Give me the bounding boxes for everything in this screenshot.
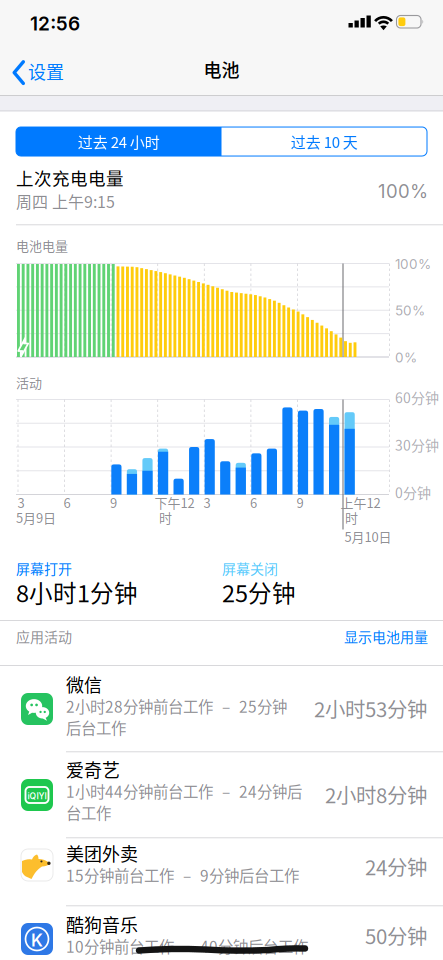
staticText: 6 bbox=[63, 493, 70, 512]
staticText: 2小时8分钟 bbox=[325, 779, 427, 809]
staticText: 上午12 bbox=[340, 493, 380, 512]
staticText: 应用活动 bbox=[16, 626, 72, 646]
staticText: 2小时28分钟前台工作 – 25分钟 bbox=[66, 695, 287, 717]
staticText: 9 bbox=[110, 493, 117, 512]
staticText: 3 bbox=[17, 493, 24, 512]
staticText: 8小时1分钟 bbox=[16, 575, 138, 609]
staticText: 1小时44分钟前台工作 – 24分钟后 bbox=[66, 780, 302, 802]
button[interactable]: iQIYI bbox=[0, 752, 443, 838]
staticText: 5月10日 bbox=[344, 527, 391, 546]
staticText: 电池电量 bbox=[16, 236, 68, 255]
staticText: 爱奇艺 bbox=[66, 756, 120, 782]
staticText: 过去 24 小时 bbox=[78, 131, 160, 152]
staticText: 酷狗音乐 bbox=[66, 911, 138, 937]
staticText: 3 bbox=[203, 493, 210, 512]
staticText: 5月9日 bbox=[16, 508, 56, 527]
staticText: 活动 bbox=[16, 373, 42, 392]
button[interactable]: 过去 24 小时 bbox=[16, 127, 221, 156]
staticText: 100% bbox=[378, 180, 428, 202]
staticText: 后台工作 bbox=[66, 716, 126, 739]
staticText: 台工作 bbox=[66, 801, 111, 824]
staticText: 6 bbox=[250, 493, 257, 512]
button[interactable]: 设置 bbox=[0, 48, 92, 95]
staticText: 设置 bbox=[28, 58, 64, 84]
staticText: 50分钟 bbox=[365, 920, 427, 950]
staticText: 屏幕关闭 bbox=[222, 558, 278, 578]
staticText: 60分钟 bbox=[395, 387, 439, 407]
button[interactable]: 过去 10 天 bbox=[221, 127, 427, 156]
button[interactable]: 屏幕打开 bbox=[16, 558, 206, 610]
staticText: 上次充电电量 bbox=[16, 165, 124, 190]
staticText: 时 bbox=[159, 508, 172, 527]
staticText: 0% bbox=[395, 349, 417, 366]
button[interactable]: 微信 bbox=[0, 666, 443, 752]
staticText: 9 bbox=[296, 493, 303, 512]
staticText: 屏幕打开 bbox=[16, 558, 72, 578]
staticText: 时 bbox=[345, 508, 358, 527]
staticText: 15分钟前台工作 – 9分钟后台工作 bbox=[66, 864, 299, 886]
staticText: 2小时53分钟 bbox=[314, 693, 427, 723]
staticText: 美团外卖 bbox=[66, 840, 138, 866]
staticText: 微信 bbox=[66, 671, 102, 697]
staticText: 50% bbox=[395, 302, 425, 319]
staticText: 100% bbox=[395, 256, 431, 272]
button[interactable]: 美团外卖 bbox=[0, 838, 443, 906]
staticText: 0分钟 bbox=[395, 482, 431, 502]
staticText: 过去 10 天 bbox=[291, 131, 358, 152]
button[interactable]: 显示电池用量 bbox=[344, 626, 428, 646]
staticText: 10分钟前台工作 – 40分钟后台工作 bbox=[66, 935, 308, 957]
staticText: 24分钟 bbox=[365, 851, 427, 881]
staticText: 30分钟 bbox=[395, 434, 439, 455]
staticText: 周四 上午9:15 bbox=[16, 189, 115, 213]
staticText: 25分钟 bbox=[222, 575, 296, 609]
staticText: 电池 bbox=[203, 56, 239, 82]
staticText: 显示电池用量 bbox=[344, 626, 428, 646]
staticText: iQIYI bbox=[27, 791, 46, 801]
staticText: 下午12 bbox=[154, 493, 194, 512]
button[interactable]: 屏幕关闭 bbox=[222, 558, 412, 610]
staticText: 12:56 bbox=[30, 12, 80, 35]
staticText: K bbox=[31, 930, 43, 951]
button[interactable]: K bbox=[0, 906, 443, 960]
